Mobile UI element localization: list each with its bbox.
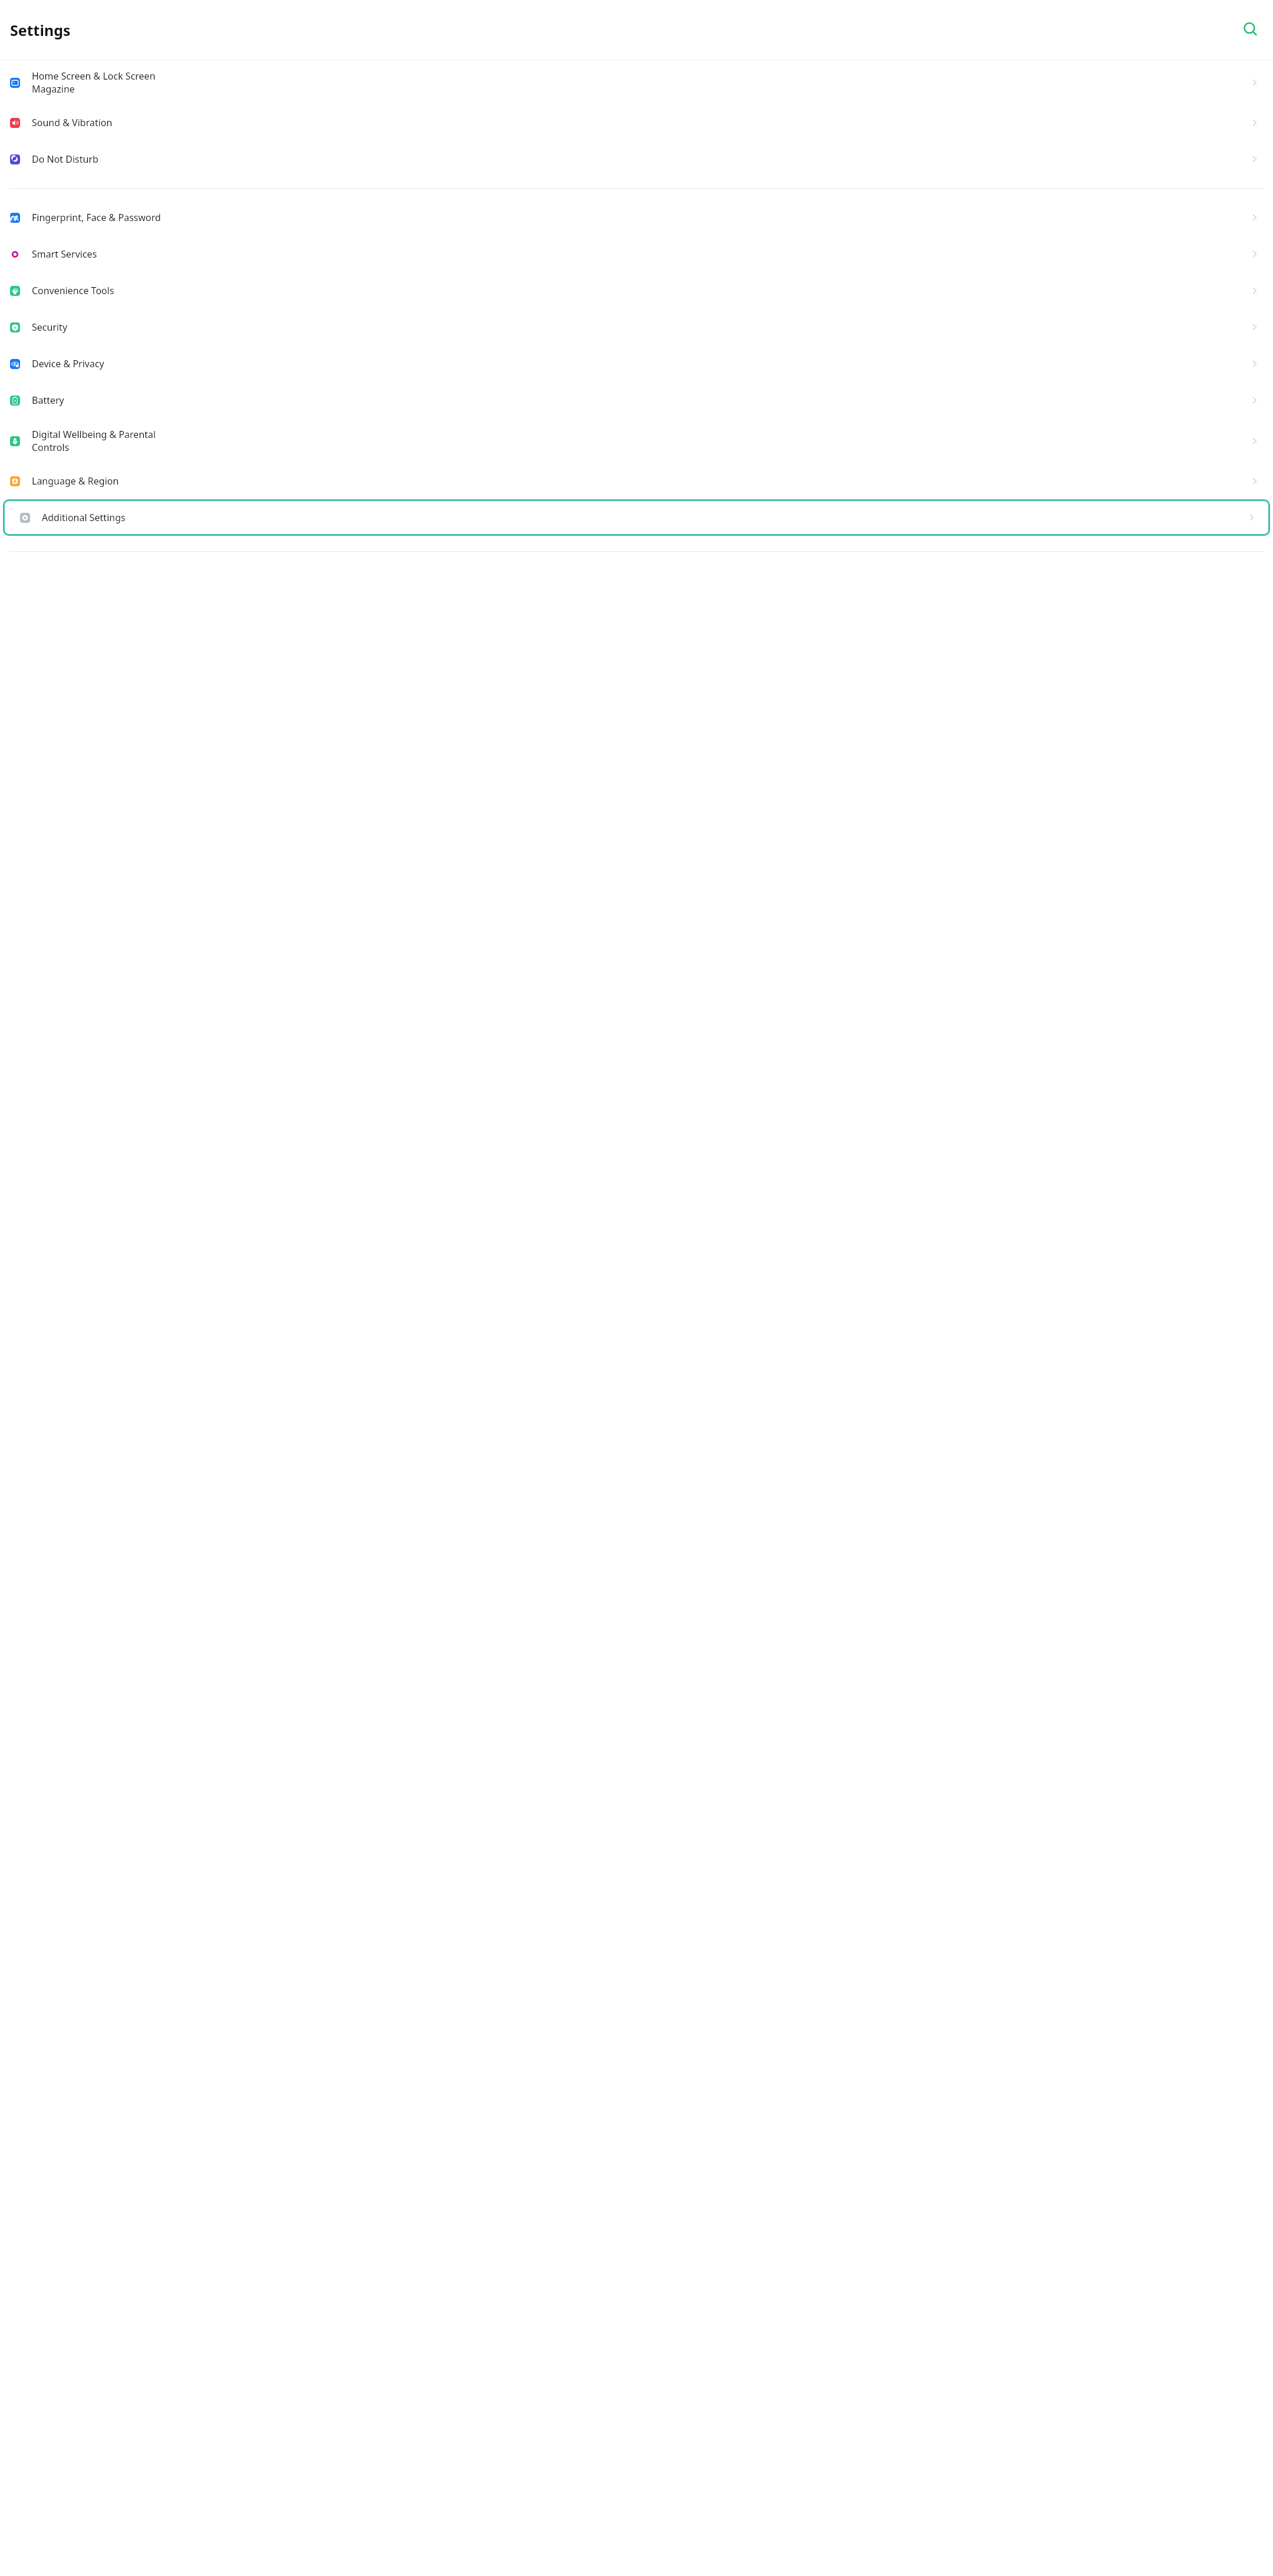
staticText: Do Not Disturb <box>32 153 1249 166</box>
staticText: Sound & Vibration <box>32 116 1249 129</box>
staticText: Digital Wellbeing & Parental Controls <box>32 428 1249 454</box>
button[interactable]: Sound & Vibration <box>0 104 1273 141</box>
button[interactable]: Fingerprint, Face & Password <box>0 199 1273 236</box>
button[interactable]: Additional Settings <box>3 499 1270 536</box>
staticText: Additional Settings <box>42 511 1246 524</box>
button[interactable]: Do Not Disturb <box>0 141 1273 177</box>
button[interactable]: Security <box>0 309 1273 345</box>
button[interactable]: Convenience Tools <box>0 272 1273 309</box>
button[interactable]: Battery <box>0 382 1273 419</box>
staticText: Smart Services <box>32 248 1249 261</box>
button[interactable]: Search <box>1237 16 1265 44</box>
staticText: Language & Region <box>32 475 1249 487</box>
staticText: Home Screen & Lock Screen Magazine <box>32 70 1249 95</box>
button[interactable]: Digital Wellbeing & Parental Controls <box>0 419 1273 463</box>
staticText: Device & Privacy <box>32 357 1249 370</box>
staticText: Battery <box>32 394 1249 407</box>
staticText: Convenience Tools <box>32 284 1249 297</box>
staticText: Fingerprint, Face & Password <box>32 211 1249 224</box>
button[interactable]: Home Screen & Lock Screen Magazine <box>0 60 1273 104</box>
button[interactable]: Device & Privacy <box>0 345 1273 382</box>
staticText: Security <box>32 321 1249 334</box>
button[interactable]: Language & Region <box>0 463 1273 499</box>
staticText: Settings <box>10 20 71 40</box>
button[interactable]: Smart Services <box>0 236 1273 272</box>
